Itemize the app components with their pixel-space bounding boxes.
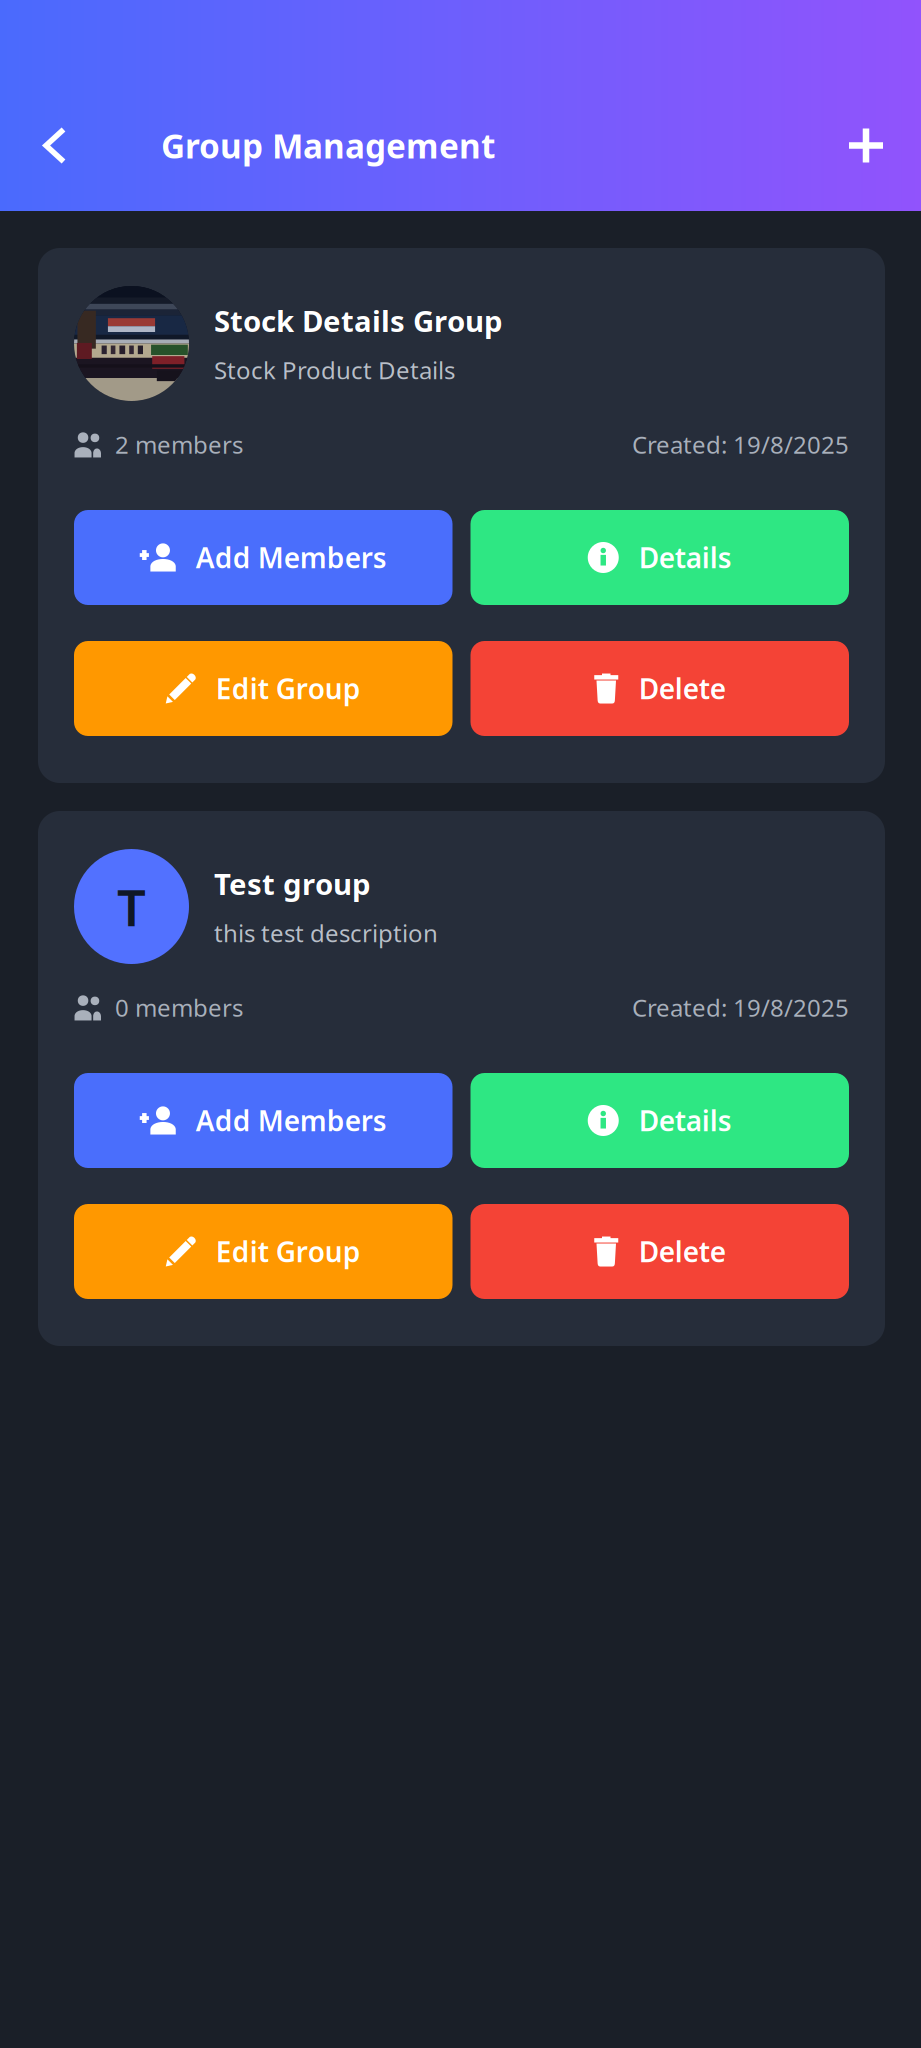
button[interactable]: Delete [470,641,849,736]
staticText: Edit Group [216,670,361,707]
staticText: Delete [639,1233,726,1270]
button[interactable]: Create group [837,116,895,174]
button[interactable]: Details [470,1073,849,1168]
staticText: 2 members [115,429,243,460]
staticText: Stock Product Details [214,354,455,386]
staticText: Edit Group [216,1233,361,1270]
staticText: this test description [214,917,438,949]
button[interactable]: Back [26,116,84,174]
staticText: Details [639,1102,732,1139]
button[interactable]: Add Members [74,1073,452,1168]
staticText: Group Management [161,123,495,168]
staticText: Details [639,539,732,576]
staticText: T [117,873,146,940]
staticText: Created: 19/8/2025 [632,992,849,1023]
button[interactable]: Edit Group [74,1204,452,1299]
button[interactable]: Delete [470,1204,849,1299]
staticText: 0 members [115,992,243,1023]
button[interactable]: Details [470,510,849,605]
staticText: Stock Details Group [214,301,503,340]
button[interactable]: Add Members [74,510,452,605]
staticText: Add Members [196,539,387,576]
staticText: Created: 19/8/2025 [632,429,849,460]
staticText: Add Members [196,1102,387,1139]
staticText: Test group [214,864,371,903]
staticText: Delete [639,670,726,707]
button[interactable]: Edit Group [74,641,452,736]
